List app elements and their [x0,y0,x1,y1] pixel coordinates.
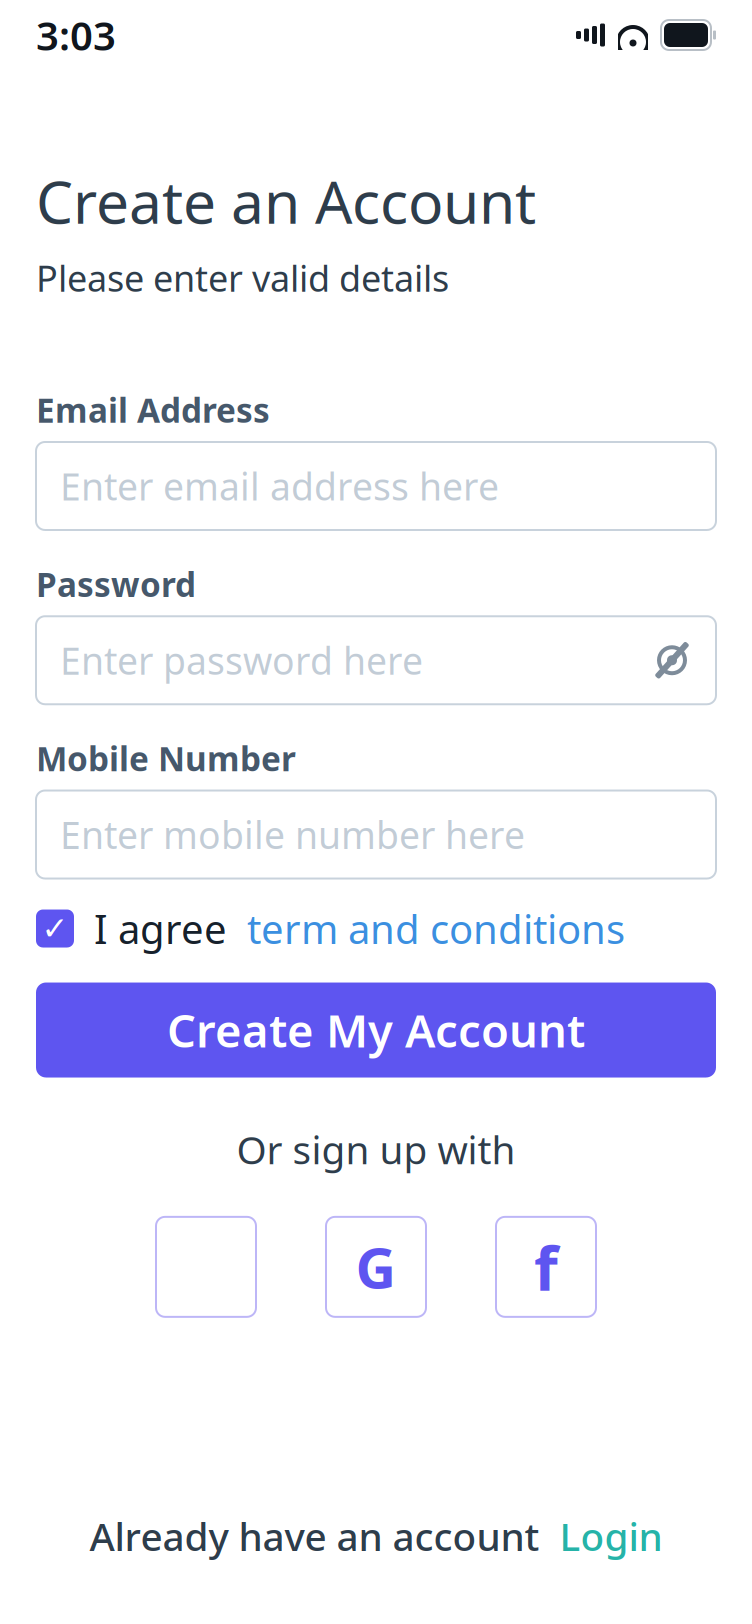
staticText: Enter email address here [60,461,499,511]
staticText: Login [559,1510,662,1562]
staticText: Enter password here [60,635,423,685]
staticText: G [355,1230,396,1304]
button[interactable]: ✓ [0,902,752,954]
staticText: ✓ [41,910,68,947]
staticText: term and conditions [247,902,625,955]
button[interactable]: Sign up with Google [326,1217,426,1317]
staticText: Enter mobile number here [60,810,525,859]
staticText: Password [36,562,196,606]
button[interactable]: Sign up with Apple [156,1217,256,1317]
staticText: Or sign up with [236,1123,515,1175]
staticText: Create My Account [167,1000,585,1060]
staticText: Mobile Number [36,736,296,780]
staticText: Email Address [36,388,270,432]
staticText: Create an Account [36,162,536,240]
staticText: Already have an account [89,1510,559,1562]
staticText: 3:03 [36,8,116,61]
button[interactable]: Sign up with Facebook [496,1217,596,1317]
staticText: I agree [74,902,247,955]
staticText: Please enter valid details [36,254,449,302]
staticText: f [534,1226,558,1307]
button[interactable]: Show password [644,632,700,688]
button[interactable]: Already have an account [0,1506,752,1566]
button[interactable]: Create My Account [36,982,716,1077]
